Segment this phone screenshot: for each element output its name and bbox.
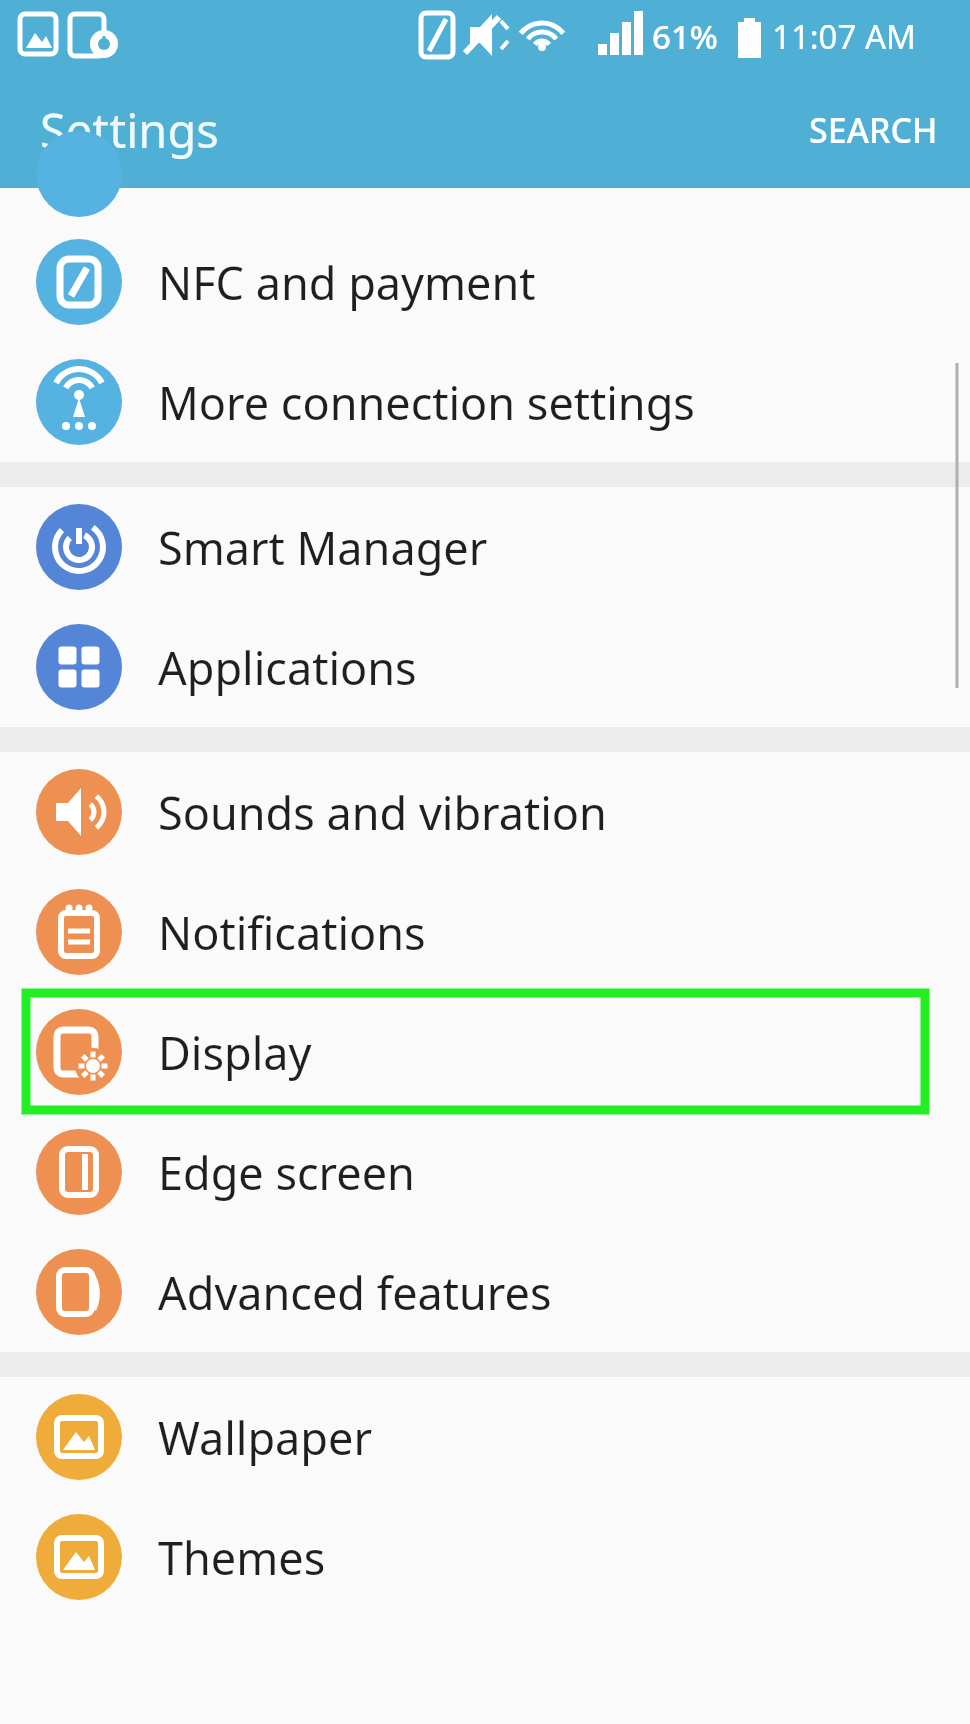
staticText: 11:07 AM xyxy=(772,14,916,59)
button[interactable]: Applications xyxy=(0,607,970,727)
staticText: Smart Manager xyxy=(158,517,488,578)
button[interactable]: Display xyxy=(0,992,970,1112)
button[interactable]: Notifications xyxy=(0,872,970,992)
staticText: 61% xyxy=(652,14,718,59)
button[interactable]: SEARCH xyxy=(777,87,970,173)
staticText: Sounds and vibration xyxy=(158,782,607,843)
staticText: Settings xyxy=(40,98,219,162)
button[interactable]: Sounds and vibration xyxy=(0,752,970,872)
staticText: Themes xyxy=(158,1527,326,1588)
button[interactable]: Themes xyxy=(0,1497,970,1617)
staticText: Applications xyxy=(158,637,417,698)
staticText: Wallpaper xyxy=(158,1407,372,1468)
button[interactable]: NFC and payment xyxy=(0,222,970,342)
staticText: Display xyxy=(158,1022,312,1083)
staticText: NFC and payment xyxy=(158,252,536,313)
staticText: SEARCH xyxy=(809,107,938,153)
button[interactable]: Edge screen xyxy=(0,1112,970,1232)
staticText: More connection settings xyxy=(158,372,695,433)
button[interactable]: Wallpaper xyxy=(0,1377,970,1497)
staticText: Edge screen xyxy=(158,1142,415,1203)
button[interactable]: Smart Manager xyxy=(0,487,970,607)
staticText: Notifications xyxy=(158,902,426,963)
button[interactable]: More connection settings xyxy=(0,342,970,462)
staticText: Advanced features xyxy=(158,1262,552,1323)
button[interactable]: Advanced features xyxy=(0,1232,970,1352)
